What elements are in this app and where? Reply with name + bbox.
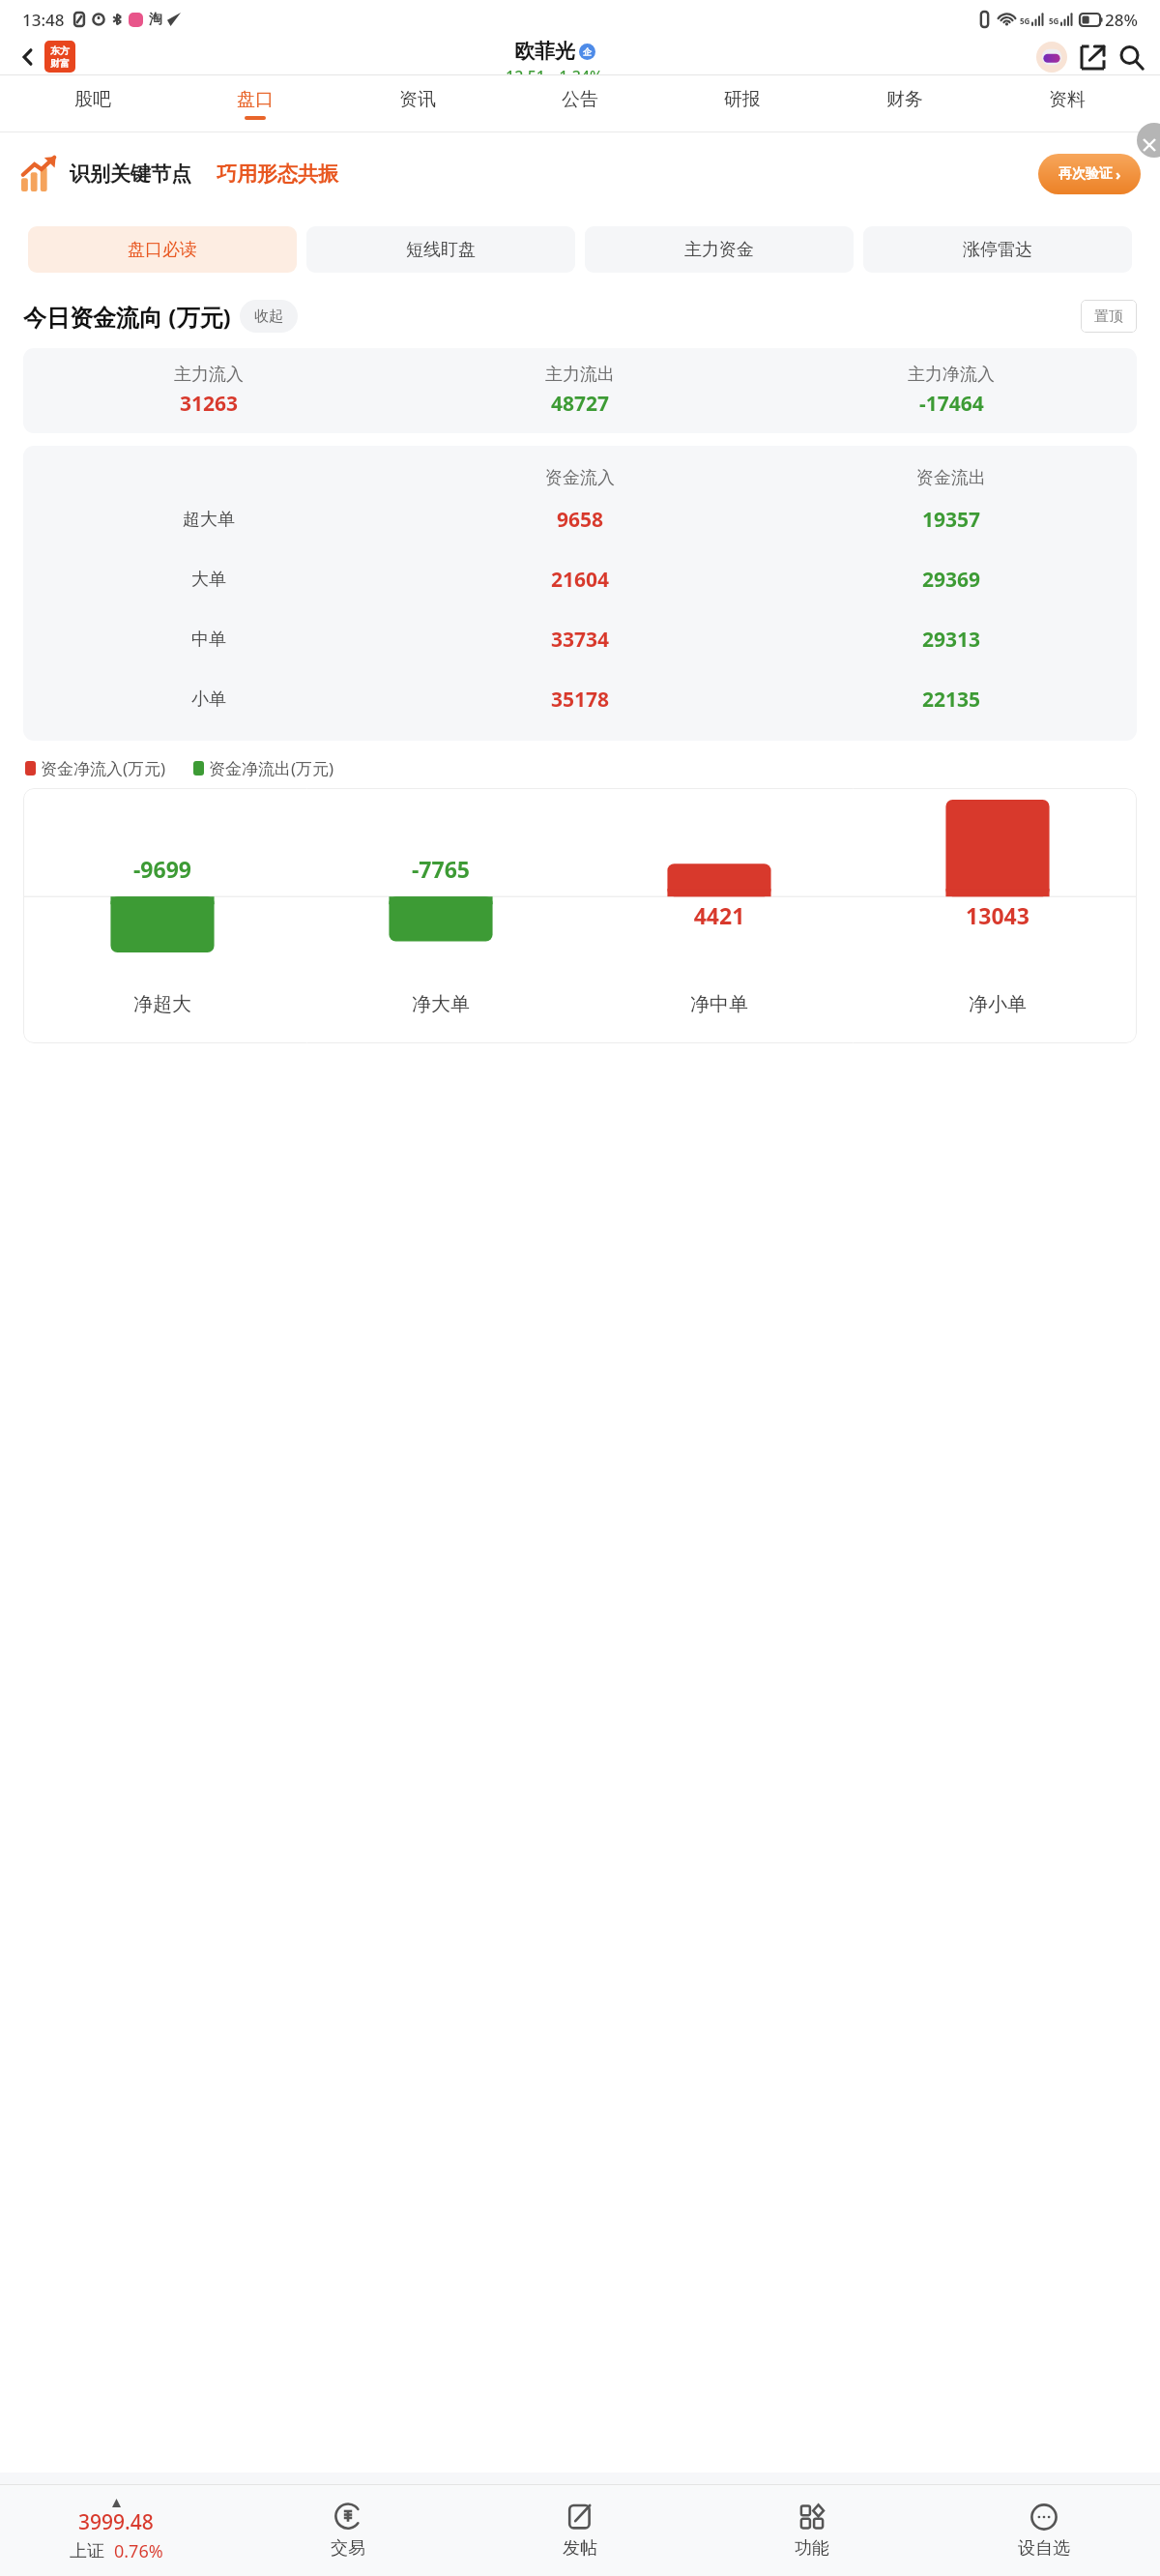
staticText: 短线盯盘 (406, 239, 476, 261)
button[interactable]: 盘口 (174, 75, 336, 132)
button[interactable]: 识别关键节点 (21, 132, 1141, 215)
staticText: 小单 (23, 688, 394, 711)
staticText: 东方 (50, 44, 70, 57)
staticText: 资讯 (399, 88, 436, 111)
staticText: 5G (1049, 15, 1059, 26)
staticText: 28% (1105, 9, 1138, 31)
staticText: 股吧 (74, 88, 111, 111)
button[interactable]: Back (12, 41, 44, 73)
button[interactable]: Close ad (1137, 123, 1160, 158)
staticText: › (1116, 164, 1121, 184)
button[interactable]: Share (1075, 40, 1110, 74)
staticText: 研报 (724, 88, 761, 111)
staticText: -7765 (302, 854, 580, 884)
staticText: 巧用形态共振 (217, 161, 338, 187)
staticText: 12.51 (506, 66, 545, 74)
staticText: 功能 (795, 2537, 829, 2560)
staticText: 主力流出 (545, 364, 615, 386)
button[interactable]: 公告 (499, 75, 661, 132)
button[interactable]: 超大单 (23, 489, 1137, 549)
staticText: 13:48 (22, 9, 65, 31)
staticText: 资金流出 (766, 467, 1137, 489)
staticText: 大单 (23, 569, 394, 591)
staticText: 净小单 (858, 992, 1137, 1016)
button[interactable]: 东方 (44, 41, 75, 73)
staticText: 收起 (254, 307, 283, 326)
staticText: 欧菲光 (514, 39, 575, 64)
staticText: 0.76% (114, 2539, 163, 2563)
staticText: 淘 (149, 11, 162, 28)
staticText: 13043 (858, 900, 1137, 930)
button[interactable]: 3999.48 (0, 2485, 232, 2576)
button[interactable]: 资讯 (336, 75, 499, 132)
button[interactable]: 设自选 (928, 2485, 1160, 2576)
staticText: 发帖 (563, 2537, 597, 2560)
button[interactable]: 研报 (661, 75, 824, 132)
button[interactable]: 资料 (986, 75, 1148, 132)
staticText: 置顶 (1094, 307, 1123, 326)
staticText: 今日资金流向 (万元) (23, 301, 231, 333)
button[interactable]: 收起 (240, 300, 298, 333)
staticText: 中单 (23, 629, 394, 651)
staticText: 35178 (394, 686, 766, 714)
staticText: 再次验证 (1058, 165, 1113, 183)
button[interactable]: 中单 (23, 609, 1137, 669)
button[interactable]: 股吧 (12, 75, 174, 132)
staticText: 设自选 (1018, 2537, 1070, 2560)
staticText: 21604 (394, 566, 766, 594)
staticText: 资金净流出(万元) (209, 757, 334, 779)
staticText: 财务 (886, 88, 923, 111)
button[interactable]: 财务 (824, 75, 986, 132)
staticText: 盘口必读 (128, 239, 197, 261)
staticText: 资金流入 (394, 467, 766, 489)
button[interactable]: 再次验证 (1038, 154, 1141, 194)
staticText: 公告 (562, 88, 598, 111)
button[interactable]: 发帖 (464, 2485, 696, 2576)
staticText: 主力净流入 (908, 364, 995, 386)
staticText: 识别关键节点 (70, 161, 191, 187)
staticText: -1.34% (554, 66, 603, 74)
staticText: -9699 (23, 854, 302, 884)
staticText: 3999.48 (78, 2508, 154, 2536)
staticText: 资料 (1049, 88, 1086, 111)
staticText: 9658 (394, 506, 766, 534)
button[interactable]: 交易 (232, 2485, 464, 2576)
staticText: 净中单 (580, 992, 858, 1016)
staticText: 上证 (70, 2540, 104, 2562)
staticText: 盘口 (237, 88, 274, 111)
staticText: 29369 (766, 566, 1137, 594)
staticText: 48727 (551, 390, 610, 418)
staticText: 净大单 (302, 992, 580, 1016)
staticText: 29313 (766, 626, 1137, 654)
button[interactable]: AI assistant (1034, 40, 1069, 74)
button[interactable]: 功能 (696, 2485, 928, 2576)
staticText: 19357 (766, 506, 1137, 534)
staticText: -17464 (919, 390, 984, 418)
staticText: 企 (583, 46, 592, 57)
button[interactable]: 小单 (23, 669, 1137, 729)
button[interactable]: Search (1114, 40, 1148, 74)
button[interactable]: 主力资金 (585, 226, 854, 273)
button[interactable]: 短线盯盘 (306, 226, 575, 273)
staticText: 交易 (331, 2537, 365, 2560)
staticText: 超大单 (23, 509, 394, 531)
staticText: 主力资金 (684, 239, 754, 261)
staticText: 财富 (50, 57, 70, 70)
button[interactable]: 盘口必读 (28, 226, 297, 273)
button[interactable]: 置顶 (1081, 300, 1137, 333)
staticText: 31263 (180, 390, 239, 418)
staticText: 5G (1020, 15, 1030, 26)
staticText: 33734 (394, 626, 766, 654)
staticText: 资金净流入(万元) (41, 757, 166, 779)
button[interactable]: 主力流入 (23, 348, 1137, 433)
button[interactable]: 大单 (23, 549, 1137, 609)
staticText: 涨停雷达 (963, 239, 1032, 261)
staticText: 22135 (766, 686, 1137, 714)
staticText: 主力流入 (174, 364, 244, 386)
button[interactable]: -9699 (23, 788, 1137, 1043)
staticText: 4421 (580, 900, 858, 930)
staticText: 净超大 (23, 992, 302, 1016)
button[interactable]: 涨停雷达 (863, 226, 1132, 273)
